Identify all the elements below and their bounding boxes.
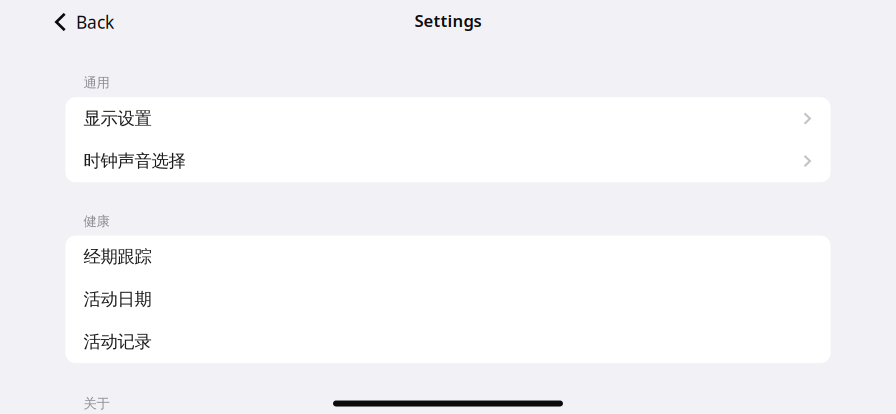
staticText: 健康 (83, 213, 109, 230)
staticText: Settings (414, 9, 481, 32)
staticText: 经期跟踪 (83, 246, 151, 268)
staticText: 活动日期 (83, 288, 151, 310)
staticText: 时钟声音选择 (83, 150, 185, 172)
button[interactable]: Back (51, 0, 124, 44)
staticText: 关于 (83, 395, 109, 412)
staticText: 活动记录 (83, 331, 151, 353)
staticText: 通用 (83, 74, 109, 91)
button[interactable]: 经期跟踪 (65, 236, 830, 278)
staticText: Back (76, 10, 114, 34)
button[interactable]: 活动记录 (65, 321, 830, 363)
button[interactable]: 显示设置 (65, 97, 830, 140)
button[interactable]: 活动日期 (65, 278, 830, 321)
staticText: 显示设置 (83, 108, 151, 129)
button[interactable]: 时钟声音选择 (65, 140, 830, 182)
